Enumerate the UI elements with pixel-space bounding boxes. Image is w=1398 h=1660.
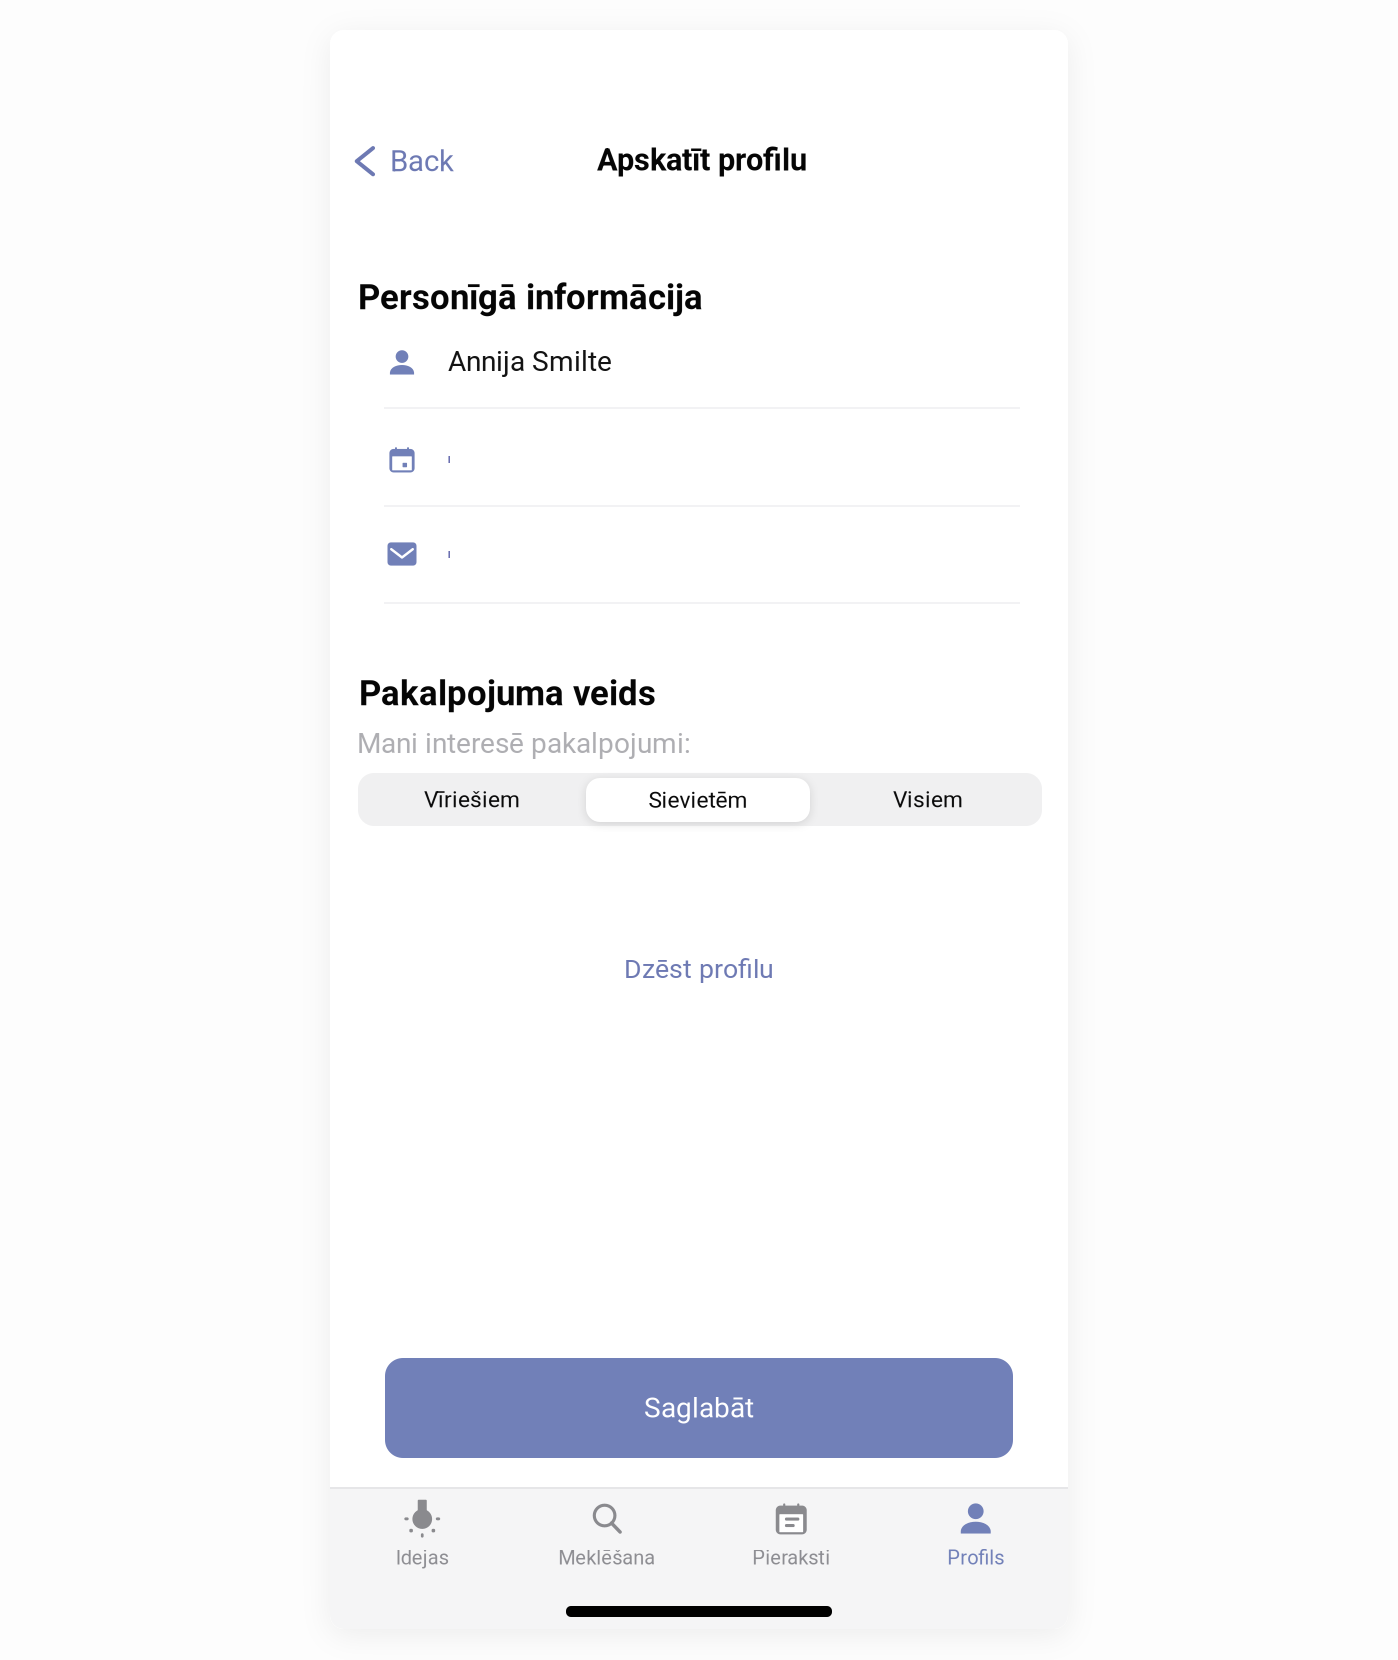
- button[interactable]: Profils: [883, 1496, 1068, 1571]
- button[interactable]: Sievietēm: [586, 778, 810, 822]
- staticText: Vīriešiem: [424, 786, 520, 813]
- button[interactable]: Idejas: [330, 1496, 514, 1571]
- button[interactable]: Meklēšana: [514, 1496, 699, 1571]
- button[interactable]: Saglabāt: [385, 1358, 1013, 1458]
- staticText: Personīgā informācija: [358, 277, 703, 318]
- staticText: Pakalpojuma veids: [359, 673, 656, 714]
- staticText: Sievietēm: [648, 787, 747, 813]
- staticText: Saglabāt: [644, 1392, 754, 1424]
- staticText: Apskatīt profilu: [597, 142, 807, 178]
- staticText: Visiem: [893, 786, 963, 813]
- staticText: Meklēšana: [558, 1546, 655, 1569]
- button[interactable]: Visiem: [814, 773, 1042, 826]
- staticText: Back: [390, 144, 454, 178]
- button[interactable]: Back: [342, 132, 462, 190]
- staticText: Idejas: [396, 1546, 449, 1569]
- staticText: Dzēst profilu: [624, 953, 774, 985]
- button[interactable]: Vīriešiem: [358, 773, 586, 826]
- staticText: Profils: [947, 1546, 1004, 1569]
- staticText: Pieraksti: [752, 1546, 830, 1569]
- staticText: Annija Smilte: [448, 345, 612, 378]
- button[interactable]: Dzēst profilu: [330, 947, 1068, 991]
- button[interactable]: Pieraksti: [699, 1496, 883, 1571]
- staticText: Mani interesē pakalpojumi:: [357, 727, 691, 760]
